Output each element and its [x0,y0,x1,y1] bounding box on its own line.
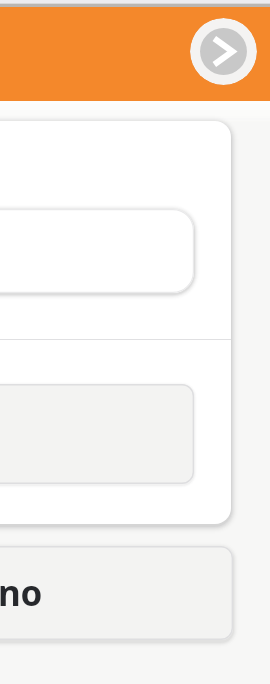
button[interactable]: Next [190,18,257,85]
button[interactable]: Bueno [0,546,233,640]
button[interactable]: Text field [0,209,194,293]
button[interactable]: Comment field [0,384,194,484]
staticText: Bueno [0,569,43,617]
